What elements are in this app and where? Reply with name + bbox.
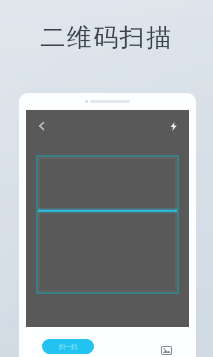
button[interactable]: Back [32,116,52,136]
staticText: 扫一扫 [59,343,77,351]
button[interactable]: 扫一扫 [42,339,94,354]
staticText: 二维码扫描 [0,22,213,53]
button[interactable]: Gallery [158,343,174,357]
button[interactable]: Flash [163,116,183,136]
